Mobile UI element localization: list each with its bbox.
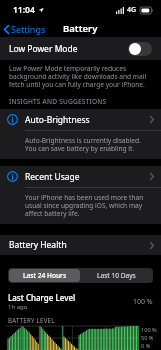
staticText: 100 % [133, 297, 153, 307]
staticText: Low Power Mode temporarily reduces backg… [9, 64, 153, 89]
staticText: Auto-Brightness is currently disabled. Y… [25, 136, 152, 153]
staticText: 50 % [141, 334, 154, 342]
button[interactable]: Auto-Brightness [0, 109, 161, 130]
button[interactable]: Last 24 Hours [9, 269, 80, 282]
staticText: Recent Usage [25, 171, 150, 183]
staticText: BATTERY LEVEL [8, 316, 55, 324]
staticText: Last Charge Level [8, 292, 76, 303]
staticText: 1h ago [8, 303, 28, 311]
button[interactable]: Last 10 Days [80, 269, 152, 282]
staticText: Last 24 Hours [23, 271, 67, 280]
staticText: Settings [11, 23, 46, 35]
staticText: Battery [63, 22, 98, 35]
button[interactable]: Settings [0, 21, 52, 37]
staticText: 11:04 [13, 4, 35, 16]
staticText: 100 % [141, 326, 157, 334]
staticText: INSIGHTS AND SUGGESTIONS [9, 97, 107, 106]
staticText: Battery Health [9, 239, 150, 251]
staticText: Low Power Mode [9, 43, 128, 55]
button[interactable]: Recent Usage [0, 166, 161, 187]
staticText: 0 % [141, 342, 151, 350]
staticText: 4G [127, 5, 137, 15]
staticText: Your iPhone has been used more than usua… [25, 193, 152, 218]
button[interactable]: Low Power Mode [0, 37, 161, 60]
button[interactable]: Low Power Mode toggle [128, 42, 152, 56]
button[interactable]: Battery Health [0, 235, 161, 255]
staticText: Auto-Brightness [25, 114, 150, 126]
staticText: Last 10 Days [97, 271, 136, 280]
